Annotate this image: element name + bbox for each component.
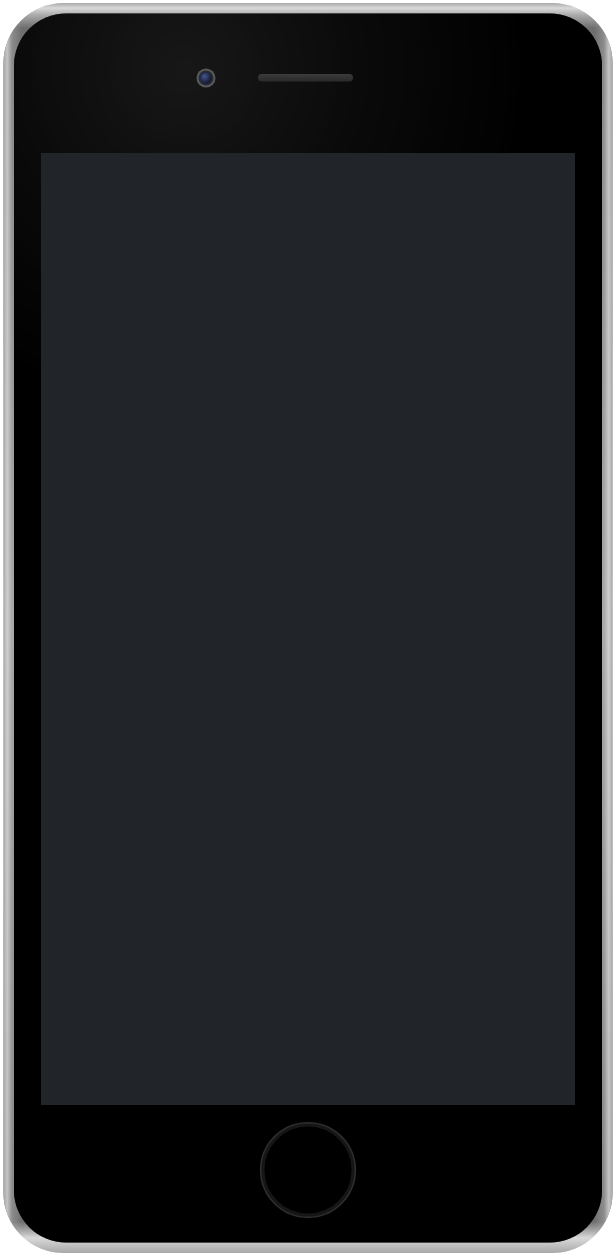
- button[interactable]: Phone device mockup with blank screen: [0, 0, 616, 1256]
